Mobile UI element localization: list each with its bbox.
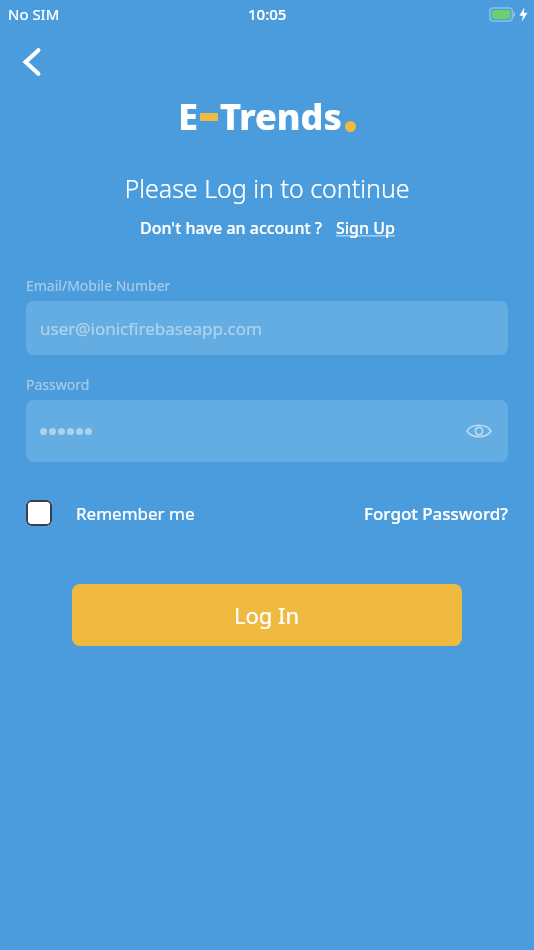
staticText: Password — [26, 375, 90, 394]
button[interactable]: user@ionicfirebaseapp.com — [26, 301, 508, 355]
staticText: E — [178, 92, 198, 141]
button[interactable]: Sign Up — [336, 217, 395, 239]
button[interactable]: Show password — [26, 400, 508, 462]
staticText: user@ionicfirebaseapp.com — [40, 317, 262, 340]
button[interactable]: Log In — [72, 584, 462, 646]
staticText: Don't have an account ? — [140, 217, 322, 239]
staticText: Forgot Password? — [364, 502, 508, 525]
staticText: 10:05 — [248, 4, 287, 24]
button[interactable]: Back — [10, 40, 54, 84]
staticText: No SIM — [8, 4, 60, 24]
staticText: Log In — [234, 600, 300, 630]
staticText: Sign Up — [336, 217, 395, 239]
staticText: Email/Mobile Number — [26, 276, 171, 295]
button[interactable]: Show password — [464, 416, 494, 446]
staticText: Remember me — [76, 502, 195, 525]
staticText: Please Log in to continue — [0, 171, 534, 205]
button[interactable]: Remember me — [26, 500, 195, 526]
button[interactable]: Forgot Password? — [364, 502, 508, 525]
staticText: Trends — [220, 92, 342, 141]
